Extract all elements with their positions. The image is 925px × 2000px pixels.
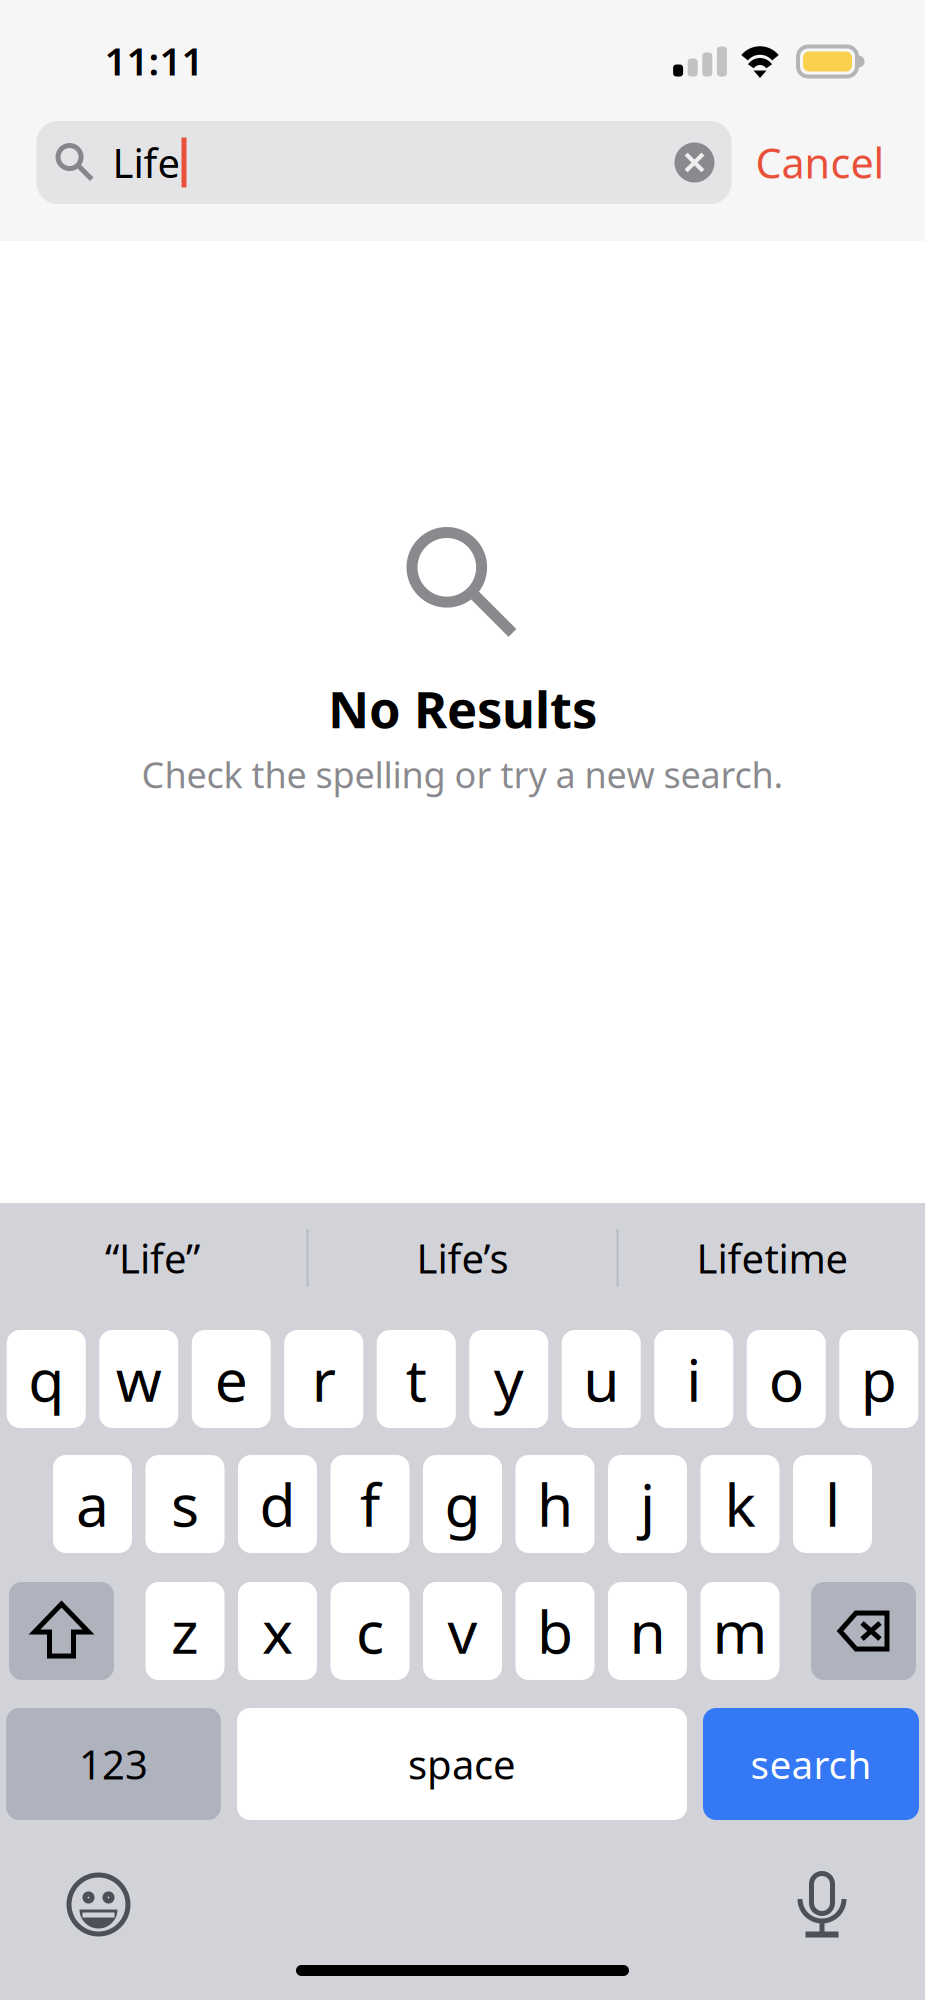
staticText: k <box>724 1465 755 1543</box>
staticText: search <box>750 1738 871 1790</box>
staticText: 123 <box>79 1737 148 1790</box>
button[interactable]: x <box>238 1582 317 1680</box>
button[interactable]: space <box>237 1708 687 1820</box>
staticText: 11:11 <box>104 35 203 86</box>
staticText: o <box>769 1340 804 1418</box>
button[interactable]: l <box>793 1455 872 1553</box>
button[interactable]: s <box>145 1455 224 1553</box>
button[interactable]: p <box>839 1330 918 1428</box>
button[interactable]: j <box>608 1455 687 1553</box>
staticText: Lifetime <box>696 1231 848 1284</box>
staticText: w <box>116 1340 162 1418</box>
button[interactable]: q <box>7 1330 86 1428</box>
staticText: g <box>444 1465 480 1543</box>
button[interactable]: search <box>703 1708 919 1820</box>
button[interactable]: Life’s <box>308 1203 616 1313</box>
staticText: a <box>76 1465 109 1543</box>
button[interactable]: Lifetime <box>618 1203 925 1313</box>
staticText: Cancel <box>755 135 884 190</box>
staticText: p <box>861 1340 897 1418</box>
staticText: j <box>640 1465 655 1543</box>
button[interactable]: t <box>377 1330 456 1428</box>
staticText: h <box>537 1465 573 1543</box>
staticText: y <box>494 1340 524 1418</box>
button[interactable]: f <box>330 1455 409 1553</box>
staticText: No Results <box>328 675 597 742</box>
button[interactable]: h <box>515 1455 594 1553</box>
button[interactable]: i <box>654 1330 733 1428</box>
staticText: u <box>583 1340 619 1418</box>
button[interactable]: w <box>99 1330 178 1428</box>
staticText: s <box>171 1465 199 1543</box>
button[interactable]: Emoji <box>66 1872 130 1936</box>
button[interactable]: m <box>700 1582 779 1680</box>
button[interactable]: Shift <box>9 1582 114 1680</box>
button[interactable]: Clear text <box>674 142 731 182</box>
button[interactable]: Cancel <box>755 135 884 190</box>
staticText: b <box>537 1592 573 1670</box>
staticText: d <box>259 1465 295 1543</box>
button[interactable]: r <box>284 1330 363 1428</box>
staticText: r <box>312 1340 336 1418</box>
staticText: “Life” <box>105 1231 200 1284</box>
staticText: q <box>28 1340 64 1418</box>
button[interactable]: e <box>192 1330 271 1428</box>
button[interactable]: u <box>562 1330 641 1428</box>
staticText: e <box>215 1340 248 1418</box>
staticText: l <box>825 1465 840 1543</box>
button[interactable]: c <box>330 1582 409 1680</box>
staticText: Life <box>112 136 180 189</box>
button[interactable]: a <box>53 1455 132 1553</box>
staticText: i <box>686 1340 701 1418</box>
staticText: t <box>406 1340 427 1418</box>
button[interactable]: b <box>515 1582 594 1680</box>
staticText: Check the spelling or try a new search. <box>141 750 783 798</box>
button[interactable]: k <box>700 1455 779 1553</box>
button[interactable]: n <box>608 1582 687 1680</box>
staticText: x <box>262 1592 293 1670</box>
button[interactable]: v <box>423 1582 502 1680</box>
button[interactable]: 123 <box>6 1708 221 1820</box>
staticText: m <box>712 1592 767 1670</box>
staticText: n <box>629 1592 665 1670</box>
button[interactable]: “Life” <box>0 1203 306 1313</box>
staticText: space <box>408 1737 516 1790</box>
button[interactable]: d <box>238 1455 317 1553</box>
button[interactable]: y <box>469 1330 548 1428</box>
staticText: f <box>360 1465 380 1543</box>
button[interactable]: g <box>423 1455 502 1553</box>
staticText: c <box>356 1592 384 1670</box>
staticText: z <box>171 1592 199 1670</box>
staticText: v <box>447 1592 477 1670</box>
button[interactable]: o <box>747 1330 826 1428</box>
button[interactable]: z <box>145 1582 224 1680</box>
button[interactable]: Dictate <box>795 1871 848 1938</box>
staticText: Life’s <box>416 1231 508 1284</box>
button[interactable]: Delete <box>811 1582 916 1680</box>
